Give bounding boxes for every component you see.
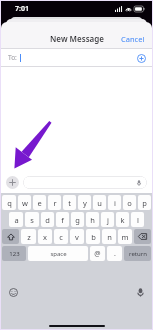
button[interactable]: j [101,212,114,227]
button[interactable]: e [33,195,46,210]
button[interactable]: t [63,195,76,210]
button[interactable]: Shift [2,229,19,244]
button[interactable]: f [56,212,69,227]
staticText: o [127,198,132,208]
staticText: q [7,198,12,208]
staticText: m [121,232,129,242]
button[interactable]: o [123,195,136,210]
button[interactable]: To: [1,49,152,66]
button[interactable]: space [28,246,88,261]
button[interactable]: . [107,246,122,261]
button[interactable]: 123 [2,246,26,261]
staticText: return [129,250,147,258]
button[interactable]: Dictate [23,176,147,189]
button[interactable]: r [48,195,61,210]
button[interactable]: u [93,195,106,210]
staticText: t [68,198,71,208]
staticText: . [114,249,116,259]
button[interactable]: l [131,212,144,227]
staticText: j [107,215,109,225]
staticText: p [142,198,147,208]
staticText: l [137,215,139,225]
button[interactable]: v [70,229,84,244]
staticText: d [45,215,50,225]
button[interactable]: Dictation [134,286,146,298]
button[interactable]: More apps [6,176,19,189]
staticText: i [114,198,116,208]
button[interactable]: s [25,212,39,227]
button[interactable]: return [124,246,151,261]
button[interactable]: Dictate [135,179,143,187]
button[interactable]: k [116,212,129,227]
button[interactable]: a [9,212,23,227]
button[interactable]: Emoji [7,286,19,298]
staticText: z [27,232,31,242]
button[interactable]: y [78,195,91,210]
staticText: g [75,215,80,225]
button[interactable]: b [86,229,100,244]
button[interactable]: h [86,212,99,227]
button[interactable]: Cancel [114,30,152,48]
staticText: 7:01 [15,4,29,14]
button[interactable]: n [102,229,116,244]
button[interactable]: g [71,212,84,227]
staticText: s [30,215,34,225]
staticText: x [43,232,47,242]
button[interactable]: x [38,229,52,244]
staticText: h [90,215,95,225]
button[interactable]: p [138,195,151,210]
staticText: b [91,232,96,242]
button[interactable]: @ [90,246,105,261]
staticText: 123 [9,250,20,258]
button[interactable]: m [118,229,132,244]
staticText: f [61,215,64,225]
button[interactable]: w [18,195,31,210]
button[interactable]: q [2,195,16,210]
staticText: w [22,198,28,208]
staticText: e [37,198,42,208]
staticText: New Message [50,33,104,44]
staticText: n [107,232,112,242]
staticText: @ [94,249,101,259]
staticText: y [83,198,87,208]
staticText: space [50,250,67,258]
staticText: u [97,198,102,208]
staticText: To: [8,53,17,62]
staticText: r [53,198,57,208]
button[interactable]: i [108,195,121,210]
button[interactable]: d [41,212,54,227]
staticText: c [59,232,63,242]
staticText: k [120,215,125,225]
staticText: Cancel [121,34,145,44]
button[interactable]: Backspace [134,229,151,244]
button[interactable]: Add contact [135,52,147,64]
button[interactable]: c [54,229,68,244]
staticText: v [75,232,79,242]
staticText: a [14,215,19,225]
button[interactable]: z [21,229,36,244]
